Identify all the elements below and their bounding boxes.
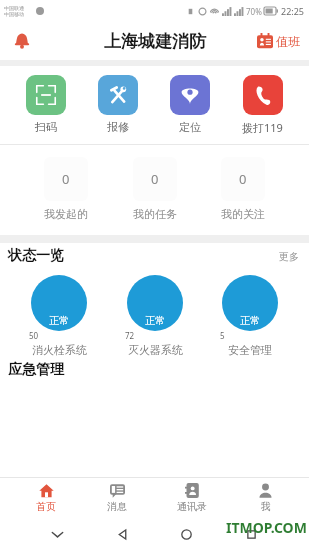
button[interactable]: 0 (221, 157, 265, 221)
staticText: 72 (125, 330, 135, 341)
staticText: 状态一览 (8, 247, 64, 265)
staticText: 消火栓系统 (32, 343, 87, 357)
staticText: 安全管理 (228, 343, 272, 357)
button[interactable]: 值班 (254, 30, 303, 52)
staticText: 应急管理 (8, 361, 64, 379)
staticText: 首页 (36, 500, 56, 513)
staticText: 22:25 (281, 5, 305, 17)
button[interactable]: 首页 (22, 481, 70, 515)
staticText: 我发起的 (44, 207, 88, 221)
staticText: 上海城建消防 (104, 31, 206, 52)
staticText: 消息 (107, 500, 127, 513)
staticText: 值班 (276, 34, 300, 49)
staticText: 报修 (107, 120, 129, 134)
staticText: 5 (220, 330, 225, 341)
button[interactable]: 通讯录 (163, 481, 221, 515)
staticText: 拨打119 (242, 120, 283, 135)
button[interactable]: 报修 (92, 75, 144, 134)
button[interactable]: 我 (244, 481, 287, 515)
staticText: 50 (29, 330, 39, 341)
staticText: 中国联通 (4, 5, 24, 11)
button[interactable]: 0 (133, 157, 177, 221)
button[interactable]: Notifications (6, 25, 38, 57)
staticText: 0 (62, 170, 70, 188)
staticText: 我 (261, 500, 271, 513)
staticText: 0 (239, 170, 247, 188)
button[interactable]: 消息 (93, 481, 141, 515)
button[interactable]: 扫码 (20, 75, 72, 134)
button[interactable]: 定位 (164, 75, 216, 134)
staticText: 正常 (49, 314, 69, 327)
button[interactable]: 正常 (119, 275, 191, 357)
staticText: 70% (246, 6, 262, 17)
button[interactable]: 正常 (23, 275, 95, 357)
staticText: 灭火器系统 (128, 343, 183, 357)
staticText: 我的关注 (221, 207, 265, 221)
staticText: 通讯录 (177, 500, 207, 513)
staticText: 定位 (179, 120, 201, 134)
button[interactable]: 正常 (214, 275, 286, 357)
staticText: 中国移动 (4, 11, 24, 17)
staticText: 扫码 (35, 120, 57, 134)
staticText: 我的任务 (133, 207, 177, 221)
button[interactable]: 拨打119 (236, 75, 289, 135)
button[interactable]: 更多 (279, 250, 299, 263)
staticText: 0 (151, 170, 159, 188)
staticText: ITMOP.COM (226, 518, 307, 537)
staticText: 正常 (240, 314, 260, 327)
staticText: 正常 (145, 314, 165, 327)
button[interactable]: 0 (44, 157, 88, 221)
